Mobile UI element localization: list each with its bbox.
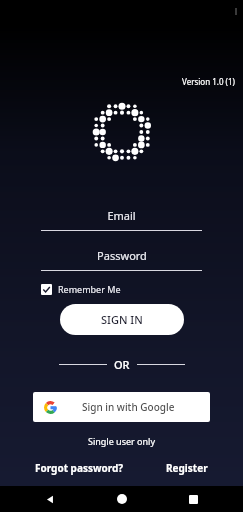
staticText: Single user only (88, 435, 156, 447)
button[interactable]: Forgot password? (33, 459, 126, 477)
button[interactable]: Sign in with Google (33, 392, 210, 422)
button[interactable]: Register (164, 459, 210, 477)
staticText: OR (114, 357, 130, 372)
button[interactable]: Back (28, 486, 72, 512)
button[interactable]: Home (100, 486, 144, 512)
staticText: Sign in with Google (82, 400, 175, 414)
staticText: Password (97, 248, 147, 263)
staticText: Remember Me (58, 283, 121, 295)
button[interactable]: Recent apps (171, 486, 215, 512)
staticText: Version 1.0 (1) (182, 76, 235, 87)
staticText: Register (166, 461, 208, 475)
button[interactable]: SIGN IN (60, 304, 184, 335)
staticText: SIGN IN (101, 312, 143, 327)
button[interactable]: Password (41, 248, 202, 271)
button[interactable]: Email (41, 208, 202, 231)
staticText: Email (107, 208, 136, 223)
button[interactable]: Remember Me (41, 283, 243, 295)
staticText: Forgot password? (35, 461, 124, 475)
